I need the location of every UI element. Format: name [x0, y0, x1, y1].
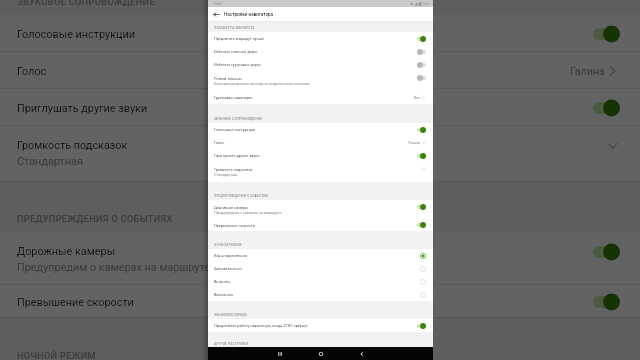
button[interactable]: Громкость подсказок	[0, 126, 640, 182]
button[interactable]: Выключено	[417, 75, 426, 81]
staticText: Предупредим о камерах на маршруте	[214, 210, 282, 214]
staticText: Если вам разрешён проезд по выделенным п…	[214, 81, 310, 85]
button[interactable]: Голос	[208, 136, 433, 149]
staticText: Превышение скорости	[17, 296, 134, 309]
button[interactable]: Не выбрано	[420, 266, 426, 272]
staticText: ДРУГИЕ НАСТРОЙКИ	[214, 342, 249, 346]
staticText: Продолжать работу навигатора, когда 2ГИС…	[214, 323, 308, 327]
staticText: Голосовые инструкции	[214, 127, 256, 131]
staticText: Избегать платных дорог	[214, 49, 258, 53]
button[interactable]: Выключен	[208, 288, 433, 301]
staticText: Избегать грунтовых дорог	[214, 62, 262, 66]
button[interactable]: Назад	[213, 11, 220, 18]
button[interactable]: Включено	[417, 36, 426, 42]
staticText: Настройки навигатора	[224, 12, 274, 17]
button[interactable]: Не выбрано	[420, 279, 426, 285]
staticText: Дорожные камеры	[17, 245, 116, 258]
staticText: Выключен	[214, 292, 233, 296]
staticText: Галина	[408, 141, 421, 145]
button[interactable]: Голосовые инструкции	[0, 15, 640, 52]
staticText: Предлагать маршрут лучше	[214, 36, 264, 40]
staticText: 13:41	[213, 2, 222, 6]
staticText: ЗВУКОВОЕ СОПРОВОЖДЕНИЕ	[214, 117, 263, 121]
staticText: Приглушать другие звуки	[17, 102, 148, 115]
button[interactable]: Как в приложении	[208, 249, 433, 262]
button[interactable]: Назад	[341, 347, 382, 360]
staticText: ЭКОНОМИЯ ЗАРЯДА	[214, 313, 247, 317]
staticText: Предупредим о камерах на маршруте	[17, 261, 210, 274]
staticText: Как в приложении	[214, 253, 247, 257]
button[interactable]: Голос	[0, 52, 640, 89]
button[interactable]: Включено	[417, 127, 426, 133]
button[interactable]: Выключено	[417, 62, 426, 68]
staticText: ЗВУКОВОЕ СОПРОВОЖДЕНИЕ	[17, 0, 155, 8]
button[interactable]: Выбрано	[420, 253, 426, 259]
staticText: Приглушать другие звуки	[214, 153, 260, 157]
button[interactable]: Включено	[417, 323, 426, 329]
button[interactable]: Избегать платных дорог	[208, 45, 433, 58]
staticText: ПАРАМЕТРЫ МАРШРУТА	[214, 26, 255, 30]
button[interactable]: Недавние приложения	[259, 347, 300, 360]
staticText: Превышение скорости	[214, 223, 255, 227]
button[interactable]: Включено	[417, 222, 426, 228]
staticText: Громкость подсказок	[214, 167, 253, 171]
button[interactable]: Автоматически	[208, 262, 433, 275]
staticText: Галина	[570, 65, 605, 77]
button[interactable]: Включено	[417, 153, 426, 159]
button[interactable]: Включено	[593, 243, 620, 261]
button[interactable]: Превышение скорости	[208, 219, 433, 231]
staticText: Дорожные камеры	[214, 205, 249, 209]
staticText: Стандартная	[17, 155, 83, 168]
button[interactable]: Приглушать другие звуки	[208, 149, 433, 162]
staticText: Режим тишины	[214, 76, 242, 80]
staticText: Голос	[17, 65, 47, 78]
button[interactable]: Предлагать маршрут лучше	[208, 32, 433, 45]
staticText: Стандартная	[214, 172, 238, 176]
button[interactable]: Включено	[417, 204, 426, 210]
staticText: Включён	[214, 279, 230, 283]
button[interactable]: Продолжать работу навигатора, когда 2ГИС…	[208, 319, 433, 332]
staticText: ПРЕДУПРЕЖДЕНИЯ О СОБЫТИЯХ	[214, 194, 269, 198]
button[interactable]: Не выбрано	[420, 292, 426, 298]
button[interactable]: Громкость подсказок	[208, 162, 433, 182]
staticText: НОЧНОЙ РЕЖИМ	[17, 351, 96, 360]
staticText: Голос	[214, 140, 225, 144]
staticText: НОЧНОЙ РЕЖИМ	[214, 243, 242, 247]
button[interactable]: Включён	[208, 275, 433, 288]
button[interactable]: Режим тишины	[208, 71, 433, 91]
staticText: Вкл	[414, 96, 421, 100]
staticText: Автоматически	[214, 266, 242, 270]
staticText: Групповая навигация	[214, 95, 253, 99]
button[interactable]: Выключено	[417, 49, 426, 55]
button[interactable]: Приглушать другие звуки	[0, 89, 640, 126]
staticText: 12:4	[423, 2, 430, 6]
staticText: Голосовые инструкции	[17, 28, 136, 41]
staticText: ПРЕДУПРЕЖДЕНИЯ О СОБЫТИЯХ	[17, 214, 173, 225]
button[interactable]: Включено	[593, 293, 620, 311]
button[interactable]: Дорожные камеры	[0, 232, 640, 285]
button[interactable]: Превышение скорости	[0, 285, 640, 318]
button[interactable]: Включено	[593, 99, 620, 117]
staticText: Громкость подсказок	[17, 139, 128, 152]
button[interactable]: Избегать грунтовых дорог	[208, 58, 433, 71]
button[interactable]: Голосовые инструкции	[208, 123, 433, 136]
button[interactable]: Дорожные камеры	[208, 200, 433, 219]
button[interactable]: Домой	[300, 347, 341, 360]
button[interactable]: Групповая навигация	[208, 91, 433, 104]
button[interactable]: Включено	[593, 25, 620, 43]
